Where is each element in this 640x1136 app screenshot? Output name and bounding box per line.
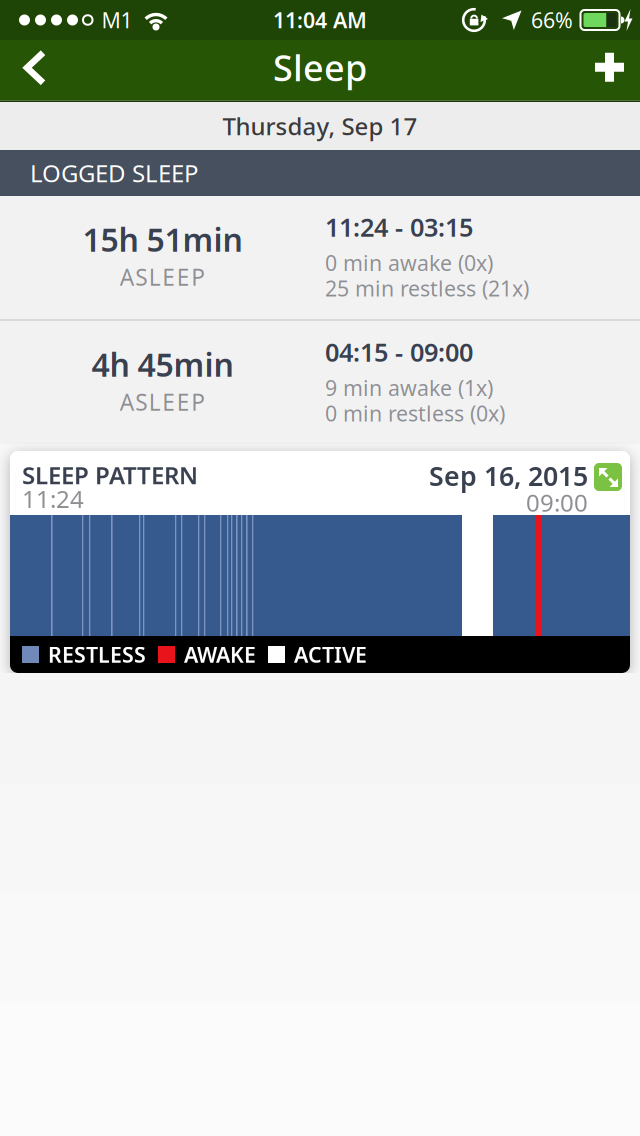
staticText: 11:24 - 03:15	[325, 210, 473, 244]
staticText: ACTIVE	[294, 640, 367, 669]
staticText: 4h 45min	[91, 343, 233, 385]
staticText: 25 min restless (21x)	[325, 274, 529, 302]
button[interactable]: 4h 45min	[0, 321, 640, 444]
staticText: Thursday, Sep 17	[222, 110, 417, 142]
staticText: ASLEEP	[120, 262, 205, 292]
staticText: 0 min awake (0x)	[325, 249, 493, 277]
staticText: M1	[101, 6, 132, 34]
button[interactable]	[595, 40, 640, 101]
staticText: LOGGED SLEEP	[30, 157, 199, 189]
button[interactable]	[0, 40, 44, 101]
staticText: 0 min restless (0x)	[325, 399, 505, 427]
staticText: 09:00	[526, 486, 588, 518]
button[interactable]: 15h 51min	[0, 196, 640, 319]
button[interactable]: SLEEP PATTERN	[10, 451, 630, 673]
staticText: 04:15 - 09:00	[325, 335, 473, 369]
staticText: AWAKE	[184, 640, 256, 669]
staticText: SLEEP PATTERN	[22, 459, 198, 491]
staticText: Sep 16, 2015	[429, 458, 588, 493]
staticText: ASLEEP	[120, 387, 205, 417]
staticText: 11:04 AM	[273, 6, 367, 34]
staticText: 66%	[531, 6, 573, 34]
staticText: Sleep	[273, 43, 367, 91]
staticText: 11:24	[22, 483, 84, 515]
staticText: 15h 51min	[82, 218, 242, 260]
staticText: 9 min awake (1x)	[325, 374, 493, 402]
staticText: RESTLESS	[48, 640, 146, 669]
